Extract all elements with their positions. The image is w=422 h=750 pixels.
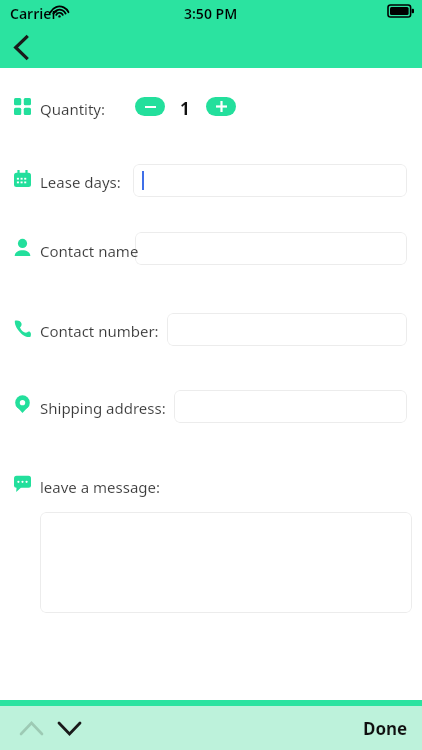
button[interactable] <box>135 232 407 265</box>
staticText: 3:50 PM <box>184 4 238 23</box>
staticText: 1 <box>180 97 190 120</box>
button[interactable]: Next field <box>48 706 90 750</box>
button[interactable] <box>174 390 407 423</box>
staticText: Lease days: <box>40 172 121 192</box>
button[interactable]: Done <box>349 709 422 748</box>
button[interactable] <box>133 164 407 197</box>
staticText: Contact number: <box>40 321 159 341</box>
button[interactable]: Previous field <box>10 706 52 750</box>
button[interactable]: Decrease quantity <box>135 97 165 116</box>
button[interactable]: Back <box>0 26 42 68</box>
staticText: Contact name <box>40 241 139 261</box>
staticText: Carrier <box>10 4 58 23</box>
button[interactable]: Increase quantity <box>206 97 236 116</box>
staticText: Done <box>363 717 408 740</box>
staticText: leave a message: <box>40 477 161 497</box>
staticText: Quantity: <box>40 99 106 119</box>
button[interactable] <box>167 313 407 346</box>
staticText: Shipping address: <box>40 398 166 418</box>
